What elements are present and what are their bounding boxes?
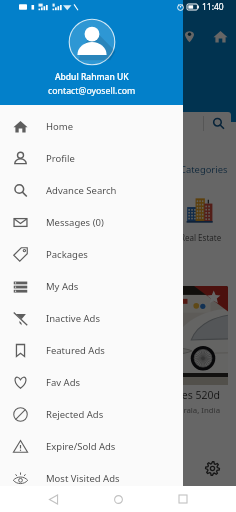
button[interactable]: Chat <box>142 450 189 486</box>
button[interactable]: Location <box>175 22 203 50</box>
button[interactable]: Home <box>0 110 183 142</box>
staticText: Abdul Rahman UK <box>55 71 129 83</box>
button[interactable]: Search here... <box>5 112 231 135</box>
button[interactable]: Recents <box>171 487 195 511</box>
staticText: 11:40 <box>202 1 224 13</box>
button[interactable]: Real Estate <box>61 186 114 256</box>
button[interactable]: My Ads <box>0 270 183 302</box>
staticText: Most Visited Ads <box>46 472 120 485</box>
button[interactable]: Back <box>41 487 65 511</box>
staticText: Categories <box>180 163 228 176</box>
button[interactable]: Rejected Ads <box>0 398 183 430</box>
staticText: Home <box>46 120 74 133</box>
staticText: Search here... <box>13 118 71 130</box>
button[interactable]: Featured Ads <box>0 334 183 366</box>
staticText: Fav Ads <box>46 376 81 389</box>
button[interactable]: Expire/Sold Ads <box>0 430 183 462</box>
staticText: Packages <box>46 248 88 261</box>
staticText: Featured Ads <box>46 344 105 357</box>
button[interactable]: Search <box>48 450 95 486</box>
staticText: Rejected Ads <box>46 408 104 421</box>
staticText: Expire/Sold Ads <box>46 440 116 453</box>
button[interactable]: Most Visited Ads <box>0 462 183 494</box>
staticText: contact@oyosell.com <box>48 85 136 97</box>
button[interactable]: Post Ad <box>95 450 142 486</box>
staticText: Inactive Ads <box>46 312 100 325</box>
button[interactable]: Real Estate <box>5 186 58 256</box>
button[interactable]: Settings <box>189 450 236 486</box>
button[interactable]: Profile <box>0 142 183 174</box>
staticText: Kozhikode, Kerala, India <box>9 405 220 416</box>
button[interactable]: Home <box>106 487 130 511</box>
staticText: Messages (0) <box>46 216 104 229</box>
staticText: Advance Search <box>46 184 117 197</box>
staticText: BMW 5 Series 520d <box>9 388 220 402</box>
staticText: My Ads <box>46 280 79 293</box>
button[interactable]: Packages <box>0 238 183 270</box>
button[interactable]: BMW 5 Series 520d <box>9 286 228 436</box>
button[interactable]: Inactive Ads <box>0 302 183 334</box>
staticText: Profile <box>46 152 75 165</box>
button[interactable]: Advance Search <box>0 174 183 206</box>
button[interactable]: Home <box>206 22 234 50</box>
button[interactable]: Home <box>0 450 48 486</box>
button[interactable]: Real Estate <box>174 186 227 256</box>
staticText: Real Estate <box>180 232 222 243</box>
button[interactable]: Fav Ads <box>0 366 183 398</box>
button[interactable]: Messages (0) <box>0 206 183 238</box>
